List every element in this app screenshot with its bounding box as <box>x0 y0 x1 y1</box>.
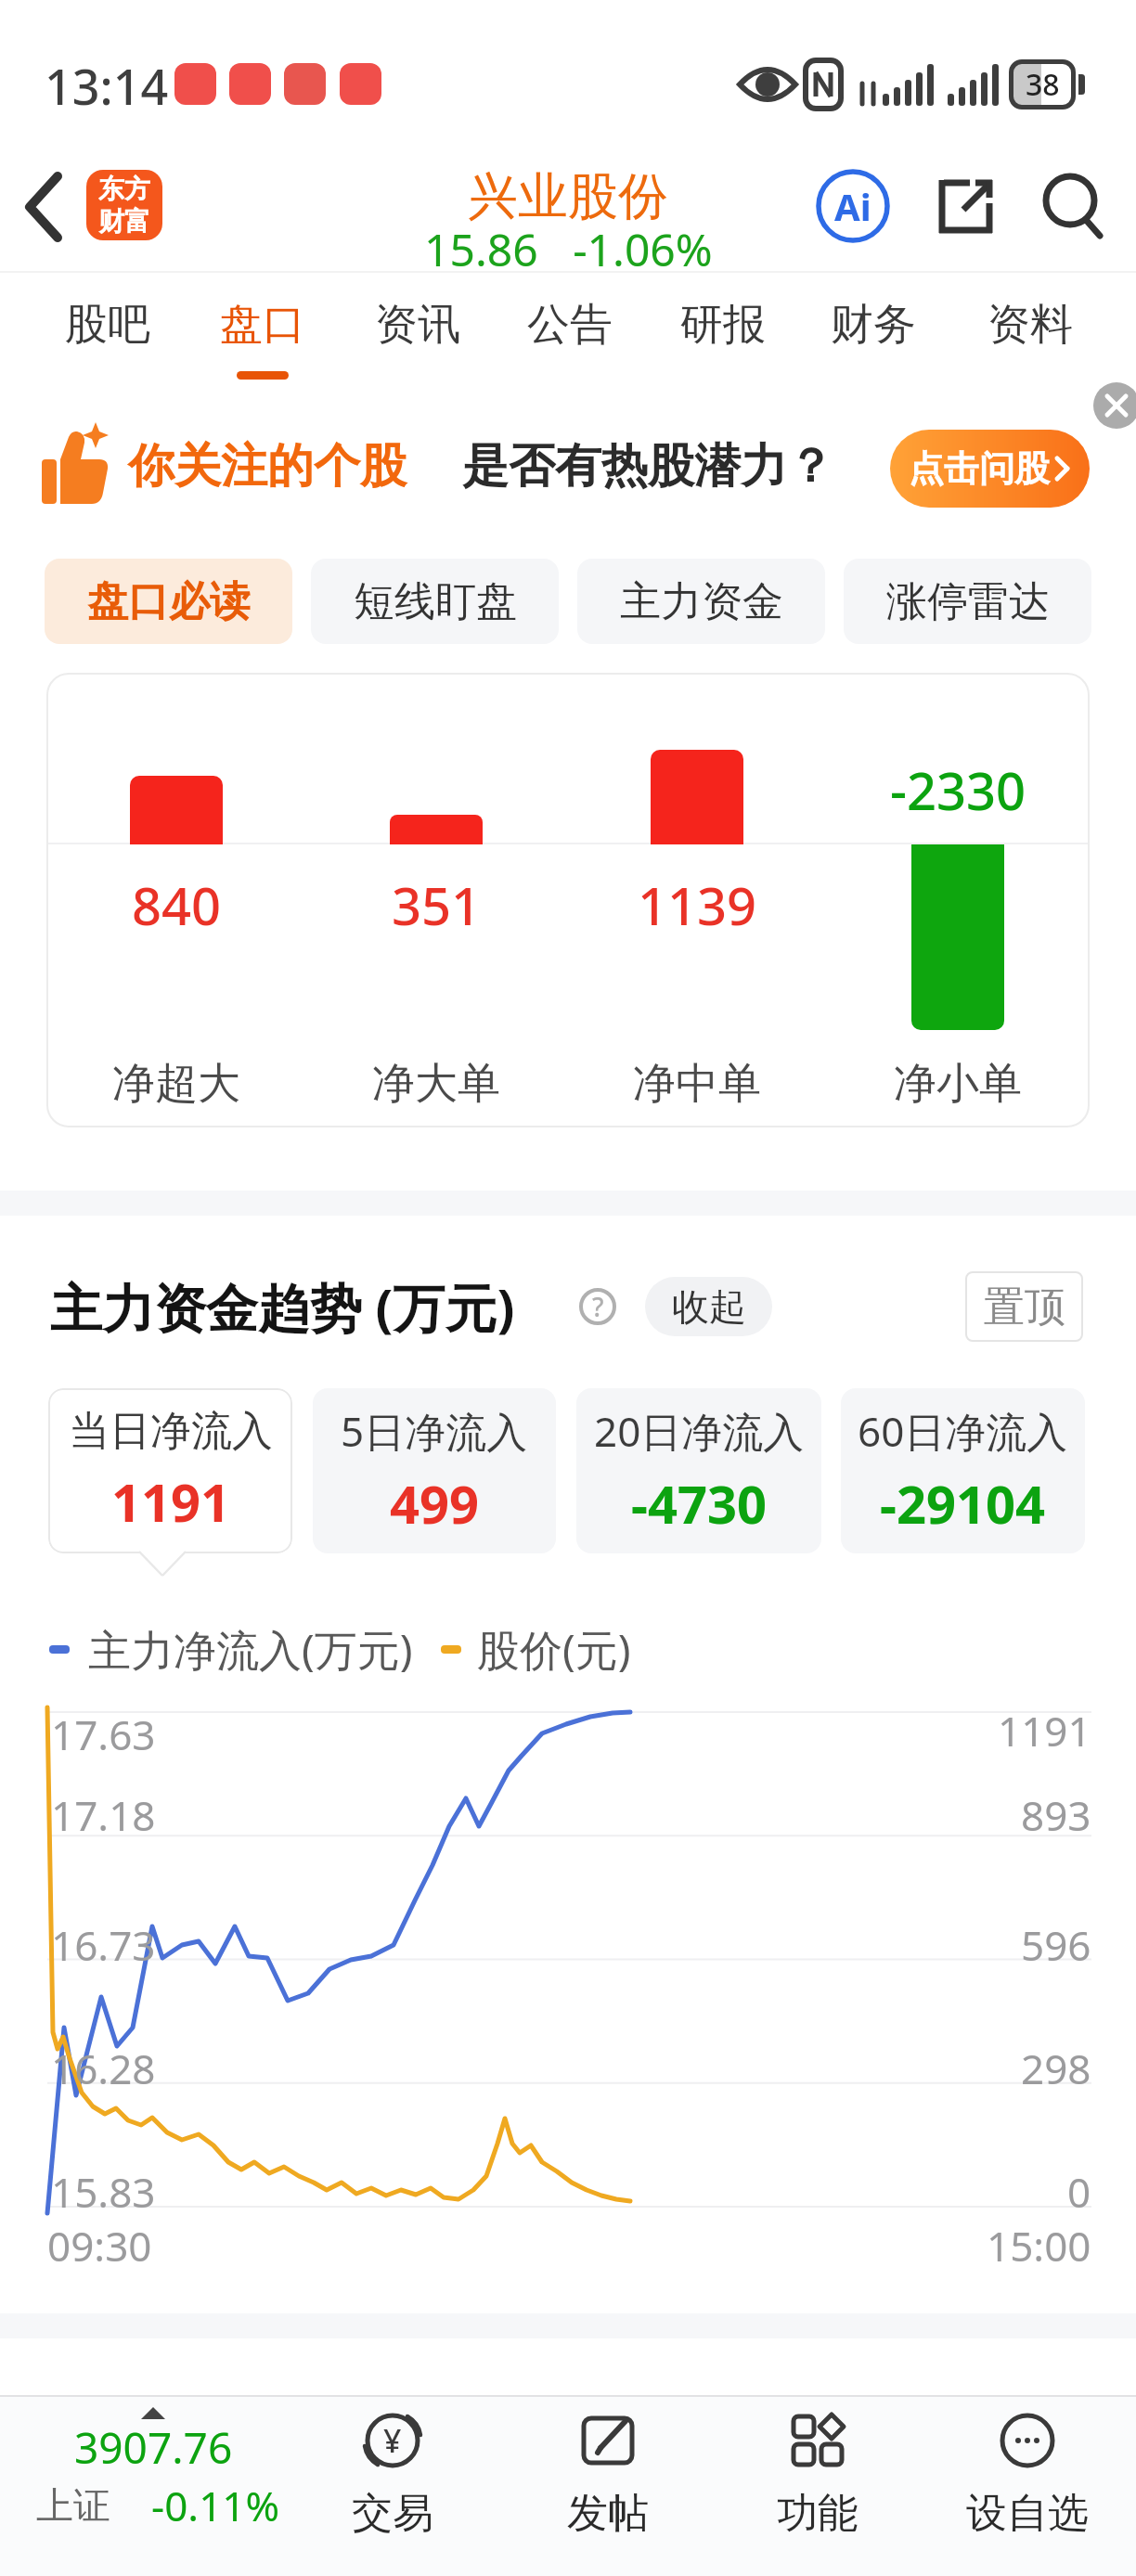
staticText: 17.63 <box>51 1707 156 1762</box>
button[interactable]: 公告 <box>496 278 644 371</box>
staticText: 财富 <box>98 205 150 238</box>
staticText: 15.83 <box>51 2164 156 2220</box>
button[interactable] <box>1093 382 1136 429</box>
staticText: Ai <box>834 181 871 231</box>
button[interactable]: 当日净流入 <box>48 1388 292 1553</box>
staticText: 设自选 <box>966 2488 1089 2539</box>
staticText: 499 <box>390 1468 480 1539</box>
button[interactable] <box>1040 173 1107 239</box>
staticText: 上证 <box>36 2482 110 2529</box>
button[interactable]: 涨停雷达 <box>844 559 1091 644</box>
button[interactable]: ¥ <box>309 2403 476 2570</box>
staticText: 5日净流入 <box>341 1403 528 1459</box>
staticText: 交易 <box>352 2488 433 2539</box>
staticText: 0 <box>1067 2164 1091 2220</box>
button[interactable]: 资讯 <box>343 278 492 371</box>
button[interactable]: 收起 <box>645 1277 772 1336</box>
staticText: 净超大 <box>112 1057 240 1111</box>
staticText: 15:00 <box>987 2218 1091 2273</box>
button[interactable]: 东方 <box>86 170 162 240</box>
staticText: 点击问股 <box>909 446 1050 491</box>
staticText: 主力资金 <box>620 576 783 627</box>
button[interactable]: 主力资金 <box>577 559 825 644</box>
staticText: -2330 <box>890 754 1026 825</box>
staticText: 38 <box>1026 64 1060 105</box>
staticText: 东方 <box>98 173 150 205</box>
staticText: 研报 <box>680 298 766 352</box>
button[interactable] <box>26 174 63 239</box>
staticText: 840 <box>132 869 222 940</box>
staticText: 资讯 <box>375 298 460 352</box>
staticText: 298 <box>1021 2041 1091 2096</box>
staticText: 股吧 <box>65 298 150 352</box>
button[interactable]: 20日净流入 <box>576 1388 821 1553</box>
button[interactable]: 发帖 <box>524 2403 691 2570</box>
button[interactable]: 财务 <box>799 278 948 371</box>
staticText: 60日净流入 <box>858 1403 1068 1459</box>
staticText: 公告 <box>527 298 613 352</box>
staticText: 收起 <box>672 1283 746 1330</box>
staticText: 主力资金趋势 (万元) <box>50 1271 515 1342</box>
staticText: 20日净流入 <box>594 1403 805 1459</box>
staticText: 09:30 <box>47 2218 152 2273</box>
staticText: -29104 <box>880 1468 1046 1539</box>
staticText: 351 <box>392 869 482 940</box>
staticText: 是否有热股潜力？ <box>462 437 833 496</box>
button[interactable]: 你关注的个股 <box>0 382 1136 549</box>
button[interactable]: 盘口 <box>188 278 337 371</box>
staticText: ? <box>592 1289 604 1324</box>
staticText: 13:14 <box>45 53 169 119</box>
button[interactable]: 60日净流入 <box>841 1388 1085 1553</box>
staticText: 1139 <box>638 869 757 940</box>
button[interactable]: 点击问股 <box>890 430 1090 508</box>
button[interactable]: 盘口必读 <box>45 559 292 644</box>
staticText: 主力净流入(万元) <box>88 1620 413 1679</box>
button[interactable]: 资料 <box>956 278 1104 371</box>
button[interactable]: 设自选 <box>944 2403 1111 2570</box>
staticText: 1191 <box>111 1466 231 1537</box>
staticText: 置顶 <box>984 1282 1065 1333</box>
staticText: -0.11% <box>151 2478 280 2533</box>
staticText: 当日净流入 <box>69 1406 273 1457</box>
staticText: 3907.76 <box>74 2418 233 2474</box>
staticText: 兴业股份 <box>468 165 668 228</box>
staticText: 净中单 <box>633 1057 761 1111</box>
staticText: 净小单 <box>894 1057 1022 1111</box>
button[interactable]: 3907.76 <box>19 2403 297 2570</box>
staticText: 涨停雷达 <box>886 576 1050 627</box>
staticText: 16.28 <box>51 2041 156 2096</box>
staticText: 净大单 <box>372 1057 500 1111</box>
button[interactable] <box>936 177 996 237</box>
button[interactable]: 股吧 <box>33 278 182 371</box>
button[interactable]: Ai <box>817 170 889 242</box>
staticText: 596 <box>1021 1917 1091 1973</box>
staticText: -4730 <box>631 1468 768 1539</box>
staticText: 你关注的个股 <box>128 437 407 496</box>
staticText: ¥ <box>383 2419 402 2462</box>
button[interactable]: 置顶 <box>965 1271 1083 1342</box>
staticText: 资料 <box>988 298 1073 352</box>
staticText: 功能 <box>777 2488 858 2539</box>
staticText: 短线盯盘 <box>354 576 517 627</box>
staticText: 股价(元) <box>477 1620 631 1679</box>
staticText: 893 <box>1021 1787 1091 1843</box>
staticText: 盘口必读 <box>87 576 251 627</box>
button[interactable]: 功能 <box>734 2403 901 2570</box>
button[interactable]: 5日净流入 <box>313 1388 556 1553</box>
staticText: 盘口 <box>220 298 305 352</box>
staticText: 16.73 <box>51 1917 156 1973</box>
staticText: 15.86 -1.06% <box>424 219 713 279</box>
staticText: 财务 <box>831 298 916 352</box>
button[interactable]: 研报 <box>649 278 797 371</box>
staticText: 17.18 <box>51 1787 156 1843</box>
button[interactable]: 短线盯盘 <box>311 559 559 644</box>
staticText: 1191 <box>998 1703 1091 1758</box>
staticText: 发帖 <box>567 2488 649 2539</box>
